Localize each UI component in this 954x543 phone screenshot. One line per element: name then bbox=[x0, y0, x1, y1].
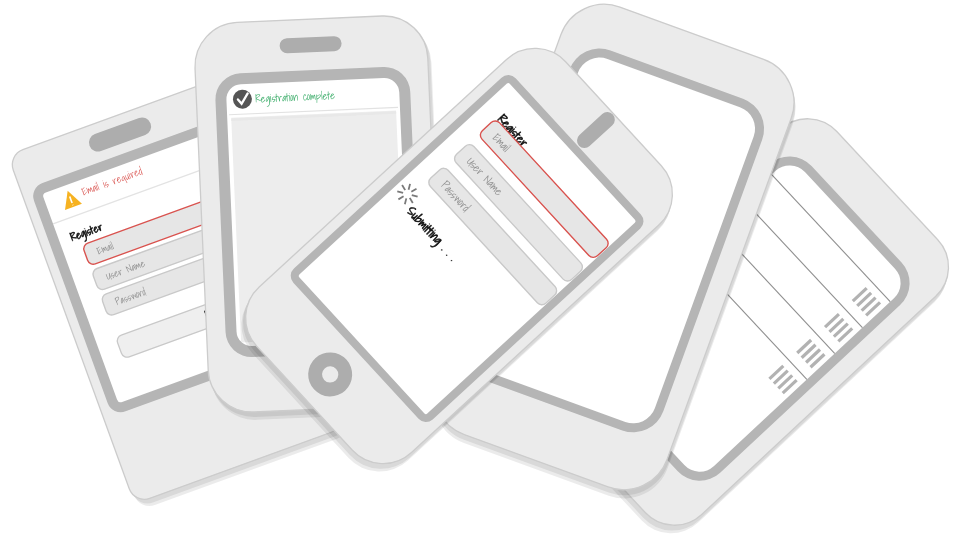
button[interactable] bbox=[0, 0, 954, 543]
